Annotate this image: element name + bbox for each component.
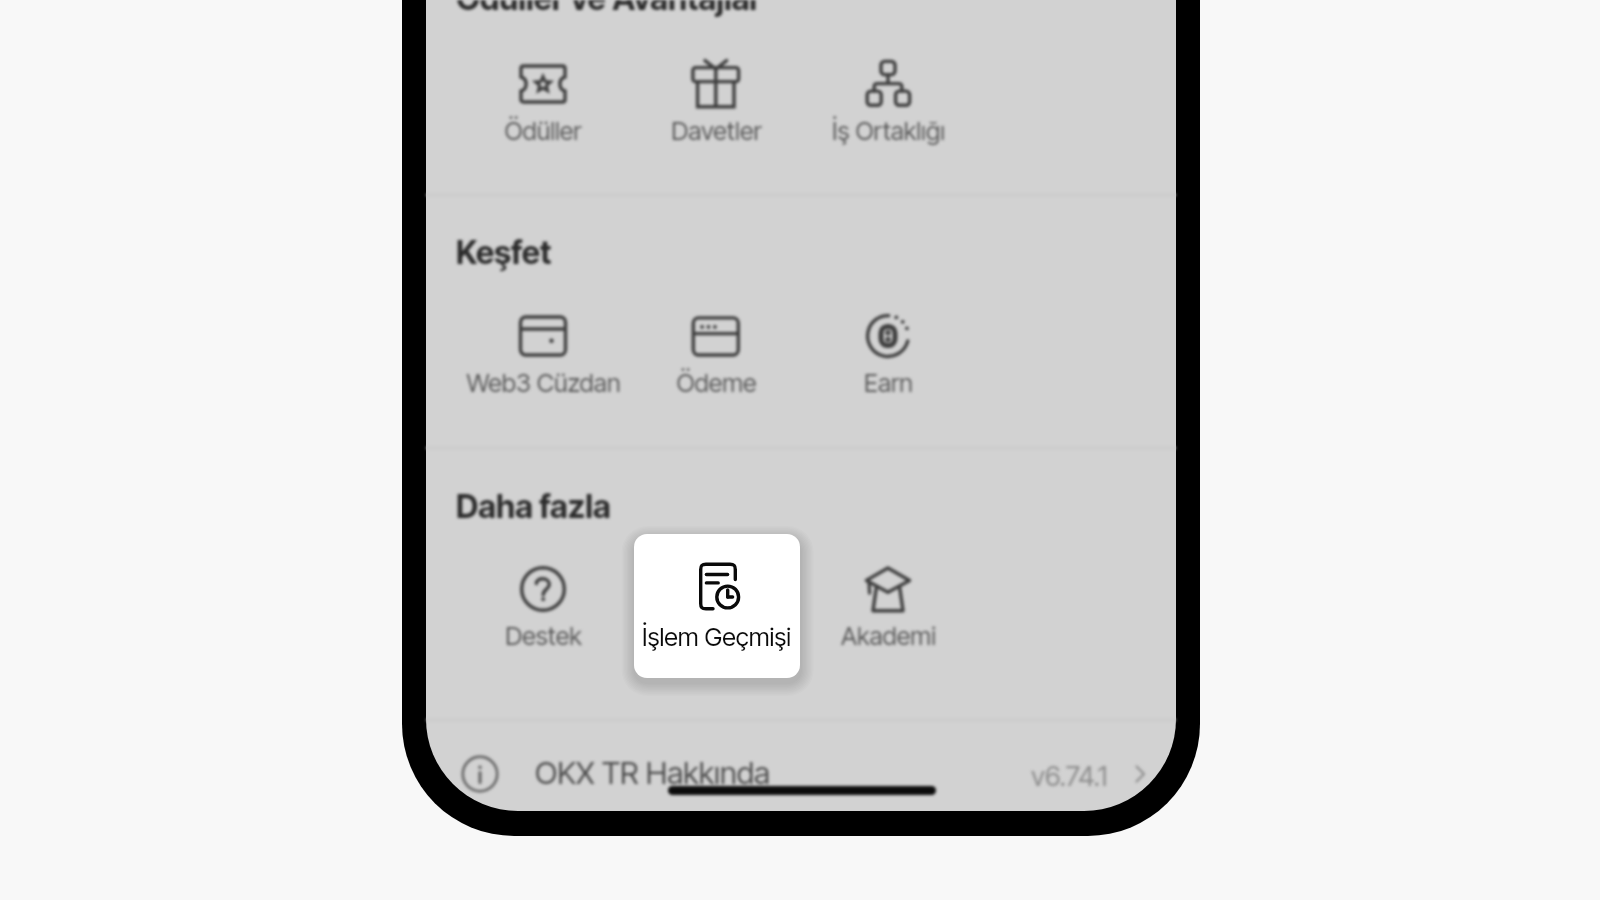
staticText: v6.74.1 xyxy=(1031,759,1108,792)
button[interactable]: Bilgi xyxy=(426,740,1176,809)
button[interactable]: İşlem Geçmişi xyxy=(630,555,802,654)
button[interactable]: Ödeme xyxy=(630,302,802,401)
staticText: Ödeme xyxy=(676,367,757,398)
other: Earn xyxy=(864,312,912,360)
button[interactable]: Web3 Cüzdan xyxy=(457,302,629,401)
other: Web3 Cüzdan xyxy=(519,312,567,360)
staticText: OKX TR Hakkında xyxy=(535,754,771,792)
other: Ödüller xyxy=(519,60,567,108)
staticText: Destek xyxy=(505,620,582,651)
button[interactable]: Ödüller xyxy=(457,50,629,149)
other: Open OKX TR Hakkında xyxy=(1129,763,1151,785)
button[interactable]: Earn xyxy=(802,302,974,401)
other: İş Ortaklığı xyxy=(864,60,912,108)
button[interactable]: İş Ortaklığı xyxy=(802,50,974,149)
staticText: Ödüller xyxy=(504,115,582,146)
staticText: Keşfet xyxy=(456,233,552,272)
other: İşlem Geçmişi xyxy=(692,565,740,613)
other: Ödeme xyxy=(692,312,740,360)
staticText: Davetler xyxy=(671,115,762,146)
staticText: Akademi xyxy=(841,620,936,651)
staticText: Earn xyxy=(864,367,913,398)
other: Davetler xyxy=(692,60,740,108)
button[interactable]: Akademi xyxy=(802,555,974,654)
button[interactable]: Destek xyxy=(457,555,629,654)
other: Destek xyxy=(519,565,567,613)
staticText: Daha fazla xyxy=(456,487,611,526)
other: Bilgi xyxy=(461,755,499,793)
button[interactable]: Davetler xyxy=(630,50,802,149)
button[interactable]: İşlem Geçmişi xyxy=(634,534,800,678)
staticText: İş Ortaklığı xyxy=(832,115,945,146)
staticText: Ödüller ve Avantajlar xyxy=(456,0,762,18)
other: Akademi xyxy=(864,565,912,613)
other: İşlem Geçmişi xyxy=(692,565,740,613)
staticText: İşlem Geçmişi xyxy=(641,620,791,651)
staticText: İşlem Geçmişi xyxy=(642,621,792,652)
staticText: Web3 Cüzdan xyxy=(466,367,621,398)
